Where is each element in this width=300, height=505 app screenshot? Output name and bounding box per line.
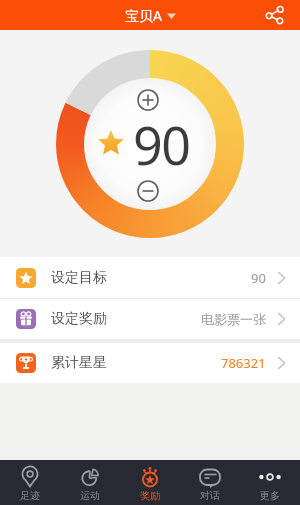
button[interactable]: 设定奖励 bbox=[0, 299, 300, 339]
staticText: 设定奖励 bbox=[51, 310, 107, 328]
staticText: 累计星星 bbox=[51, 354, 107, 372]
staticText: 宝贝A bbox=[125, 6, 162, 25]
staticText: 对话 bbox=[200, 489, 220, 502]
staticText: 运动 bbox=[80, 489, 100, 502]
staticText: 奖励 bbox=[140, 489, 160, 502]
button[interactable] bbox=[137, 89, 159, 111]
button[interactable]: 运动 bbox=[60, 460, 120, 505]
button[interactable]: 奖励 bbox=[120, 460, 180, 505]
staticText: 足迹 bbox=[20, 489, 40, 502]
button[interactable]: 设定目标 bbox=[0, 257, 300, 298]
button[interactable] bbox=[266, 6, 284, 24]
staticText: 90 bbox=[133, 109, 190, 180]
button[interactable]: 更多 bbox=[240, 460, 300, 505]
button[interactable]: 对话 bbox=[180, 460, 240, 505]
staticText: 更多 bbox=[260, 489, 280, 502]
button[interactable]: 宝贝A bbox=[125, 6, 176, 25]
button[interactable]: 累计星星 bbox=[0, 343, 300, 383]
staticText: 786321 bbox=[221, 354, 266, 372]
button[interactable]: 足迹 bbox=[0, 460, 60, 505]
staticText: 设定目标 bbox=[51, 269, 107, 287]
staticText: 电影票一张 bbox=[201, 311, 266, 327]
button[interactable] bbox=[137, 180, 159, 202]
staticText: 90 bbox=[251, 269, 266, 287]
